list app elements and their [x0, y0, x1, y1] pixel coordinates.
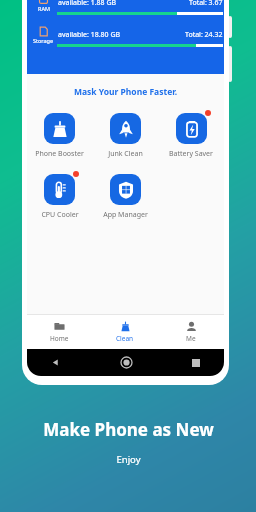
button[interactable]: CPU Cooler	[27, 174, 92, 220]
staticText: Clean	[116, 334, 134, 343]
button[interactable]: Clean	[92, 315, 158, 349]
button[interactable]: Battery Saver	[158, 113, 224, 159]
staticText: Enjoy	[116, 453, 141, 466]
staticText: Me	[186, 334, 196, 343]
staticText: RAM	[38, 5, 50, 12]
staticText: Total: 3.67	[189, 0, 223, 8]
button[interactable]: Home	[27, 315, 92, 349]
staticText: available: 18.80 GB	[58, 30, 121, 40]
staticText: Make Phone as New	[43, 418, 214, 441]
staticText: Junk Clean	[108, 149, 143, 159]
other: Home	[121, 357, 132, 368]
staticText: Home	[50, 334, 69, 343]
staticText: Storage	[33, 37, 54, 44]
button[interactable]: Phone Booster	[27, 113, 92, 159]
staticText: CPU Cooler	[41, 210, 79, 220]
staticText: Mask Your Phone Faster.	[27, 86, 224, 98]
button[interactable]: Me	[158, 315, 224, 349]
other: Back	[51, 358, 60, 367]
button[interactable]: Junk Clean	[92, 113, 158, 159]
staticText: Battery Saver	[169, 149, 213, 159]
staticText: available: 1.88 GB	[58, 0, 117, 8]
staticText: Total: 24.32	[185, 30, 223, 40]
staticText: Phone Booster	[35, 149, 84, 159]
button[interactable]: App Manager	[92, 174, 158, 220]
staticText: App Manager	[103, 210, 148, 220]
